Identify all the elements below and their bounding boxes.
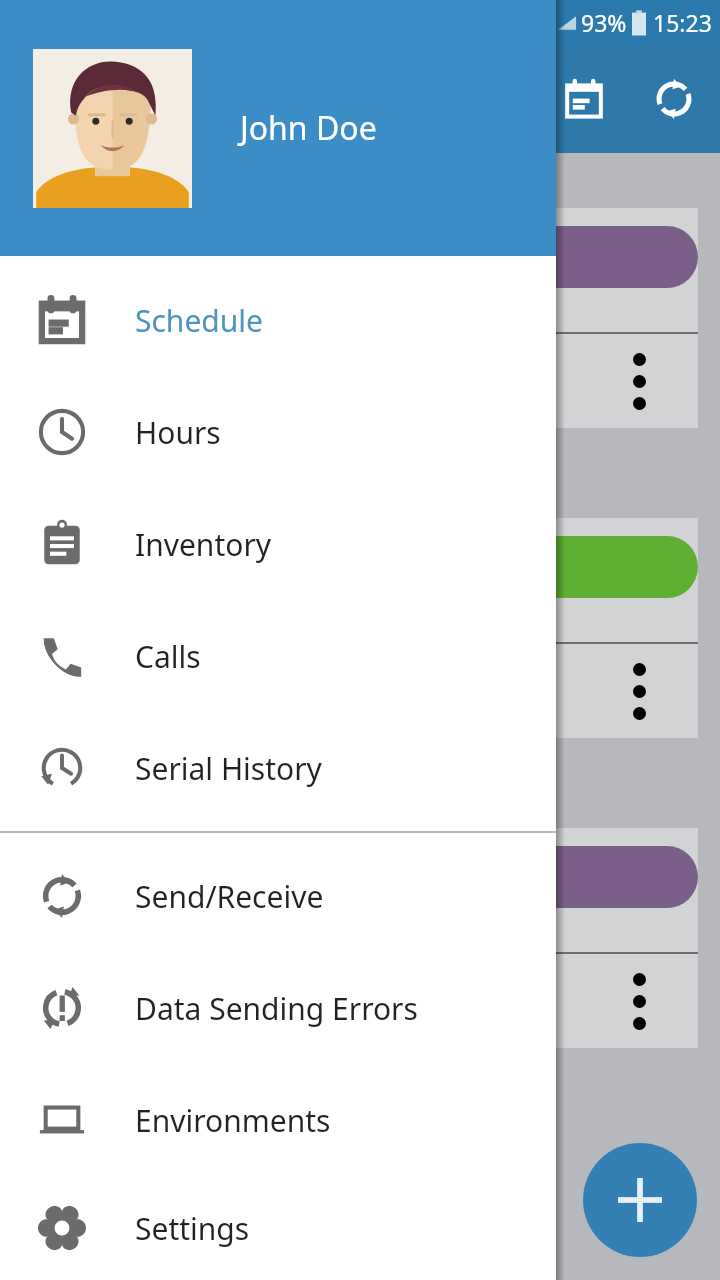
button[interactable]: Accepted <box>40 208 698 428</box>
staticText: Settings <box>135 1208 250 1249</box>
staticText: Schedule <box>135 300 263 341</box>
button[interactable]: Calendar <box>556 71 612 127</box>
staticText: 15:23 <box>653 7 712 38</box>
staticText: Send/Receive <box>135 876 324 917</box>
button[interactable]: Environments <box>0 1064 556 1176</box>
staticText: Calls <box>135 636 201 677</box>
staticText: Hours <box>135 412 221 453</box>
button[interactable]: Accepted <box>40 828 698 1048</box>
staticText: 93% <box>581 7 627 38</box>
staticText: Serial History <box>135 748 322 789</box>
staticText: Environments <box>135 1100 331 1141</box>
button[interactable]: Data Sending Errors <box>0 952 556 1064</box>
button[interactable]: Inventory <box>0 488 556 600</box>
button[interactable]: Send/Receive <box>0 840 556 952</box>
button[interactable]: Calls <box>0 600 556 712</box>
button[interactable]: Serial History <box>0 712 556 824</box>
button[interactable]: Sync <box>646 71 702 127</box>
button[interactable]: Add <box>583 1143 697 1257</box>
button[interactable]: Settings <box>0 1176 556 1280</box>
staticText: Accepted <box>366 237 496 278</box>
staticText: Inventory <box>135 524 272 565</box>
staticText: John Doe <box>240 106 377 150</box>
button[interactable]: Schedule <box>0 264 556 376</box>
button[interactable]: Hours <box>0 376 556 488</box>
staticText: Data Sending Errors <box>135 988 418 1029</box>
button[interactable]: Completed <box>40 518 698 738</box>
